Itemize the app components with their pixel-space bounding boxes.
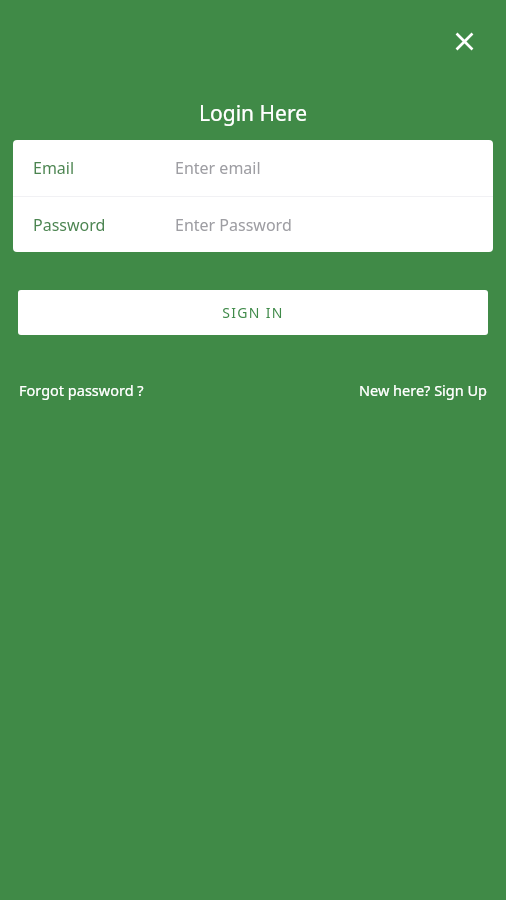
button[interactable]: Forgot password ?: [19, 375, 144, 405]
button[interactable]: SIGN IN: [18, 290, 488, 335]
staticText: Password: [33, 214, 106, 236]
button[interactable]: Password: [13, 197, 493, 252]
staticText: New here? Sign Up: [359, 380, 488, 400]
button[interactable]: New here? Sign Up: [359, 375, 488, 405]
staticText: Email: [33, 157, 75, 179]
staticText: Forgot password ?: [19, 380, 144, 400]
staticText: Enter email: [175, 157, 261, 179]
button[interactable]: Close: [443, 20, 485, 62]
button[interactable]: Email: [13, 140, 493, 196]
staticText: Login Here: [199, 99, 307, 128]
staticText: Enter Password: [175, 214, 292, 236]
staticText: SIGN IN: [222, 303, 284, 322]
